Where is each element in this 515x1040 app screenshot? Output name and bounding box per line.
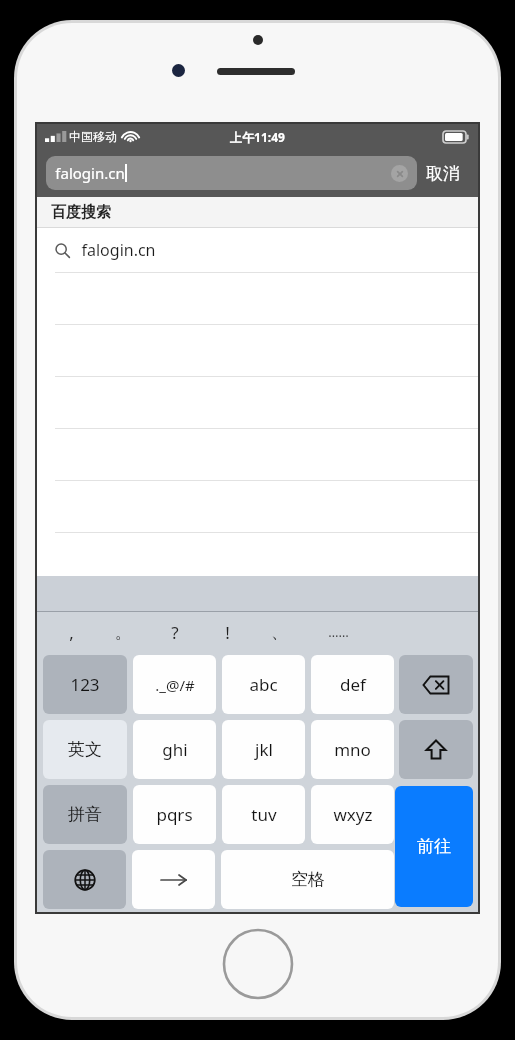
button[interactable]: 英文 — [43, 720, 127, 779]
button[interactable]: Clear text — [391, 165, 408, 182]
button[interactable]: pqrs — [133, 785, 216, 844]
button[interactable]: ! — [201, 612, 253, 652]
staticText: def — [340, 673, 366, 696]
button[interactable]: , — [45, 612, 97, 652]
staticText: 百度搜索 — [51, 203, 111, 222]
staticText: 拼音 — [68, 804, 102, 825]
button[interactable]: def — [311, 655, 394, 714]
staticText: 前往 — [417, 836, 451, 857]
button[interactable]: wxyz — [311, 785, 394, 844]
button[interactable]: tuv — [222, 785, 305, 844]
staticText: 取消 — [426, 163, 460, 184]
staticText: 英文 — [68, 739, 102, 760]
button[interactable]: ? — [149, 612, 201, 652]
staticText: falogin.cn — [81, 239, 156, 261]
button[interactable]: 拼音 — [43, 785, 127, 844]
button[interactable]: 123 — [43, 655, 127, 714]
button[interactable]: 空格 — [221, 850, 394, 909]
button[interactable]: 、 — [253, 612, 305, 652]
button[interactable]: Delete — [399, 655, 473, 714]
button[interactable]: 前往 — [395, 786, 473, 907]
staticText: tuv — [251, 803, 277, 826]
staticText: 、 — [271, 622, 288, 643]
button[interactable]: jkl — [222, 720, 305, 779]
button[interactable]: 取消 — [417, 159, 469, 188]
staticText: , — [69, 621, 74, 644]
staticText: …… — [328, 623, 349, 641]
button[interactable]: falogin.cn — [37, 228, 478, 272]
button[interactable]: Switch keyboard — [43, 850, 126, 909]
button[interactable]: …… — [305, 612, 371, 652]
button[interactable]: mno — [311, 720, 394, 779]
staticText: falogin.cn — [55, 163, 125, 183]
staticText: wxyz — [333, 803, 373, 826]
staticText: ! — [225, 621, 230, 644]
staticText: 。 — [115, 622, 132, 643]
staticText: mno — [334, 738, 371, 761]
button[interactable]: Shift — [399, 720, 473, 779]
button[interactable]: abc — [222, 655, 305, 714]
button[interactable]: 。 — [97, 612, 149, 652]
staticText: ? — [171, 621, 179, 644]
staticText: abc — [249, 673, 278, 696]
staticText: ghi — [162, 738, 188, 761]
button[interactable]: ghi — [133, 720, 216, 779]
staticText: ._@/# — [155, 675, 195, 695]
staticText: jkl — [255, 738, 273, 761]
staticText: 上午11:49 — [230, 129, 285, 145]
button[interactable]: falogin.cn — [46, 156, 417, 190]
staticText: 空格 — [291, 869, 325, 890]
button[interactable]: ._@/# — [133, 655, 216, 714]
button[interactable]: Next — [132, 850, 215, 909]
staticText: 中国移动 — [69, 129, 117, 144]
staticText: 123 — [70, 673, 100, 696]
staticText: pqrs — [156, 803, 193, 826]
